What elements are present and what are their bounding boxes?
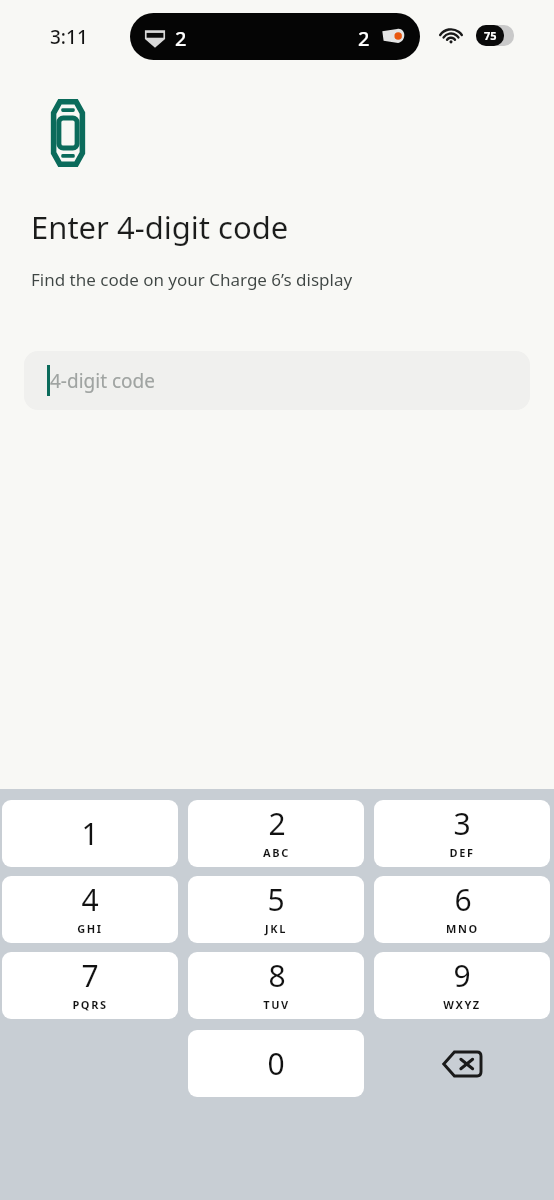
staticText: DEF	[449, 845, 475, 860]
staticText: Enter 4-digit code	[31, 206, 289, 248]
button[interactable]: 6	[374, 876, 550, 943]
button[interactable]: 7	[2, 952, 178, 1019]
staticText: Find the code on your Charge 6’s display	[31, 268, 353, 291]
staticText: 2	[175, 25, 187, 52]
button[interactable]: Backspace	[374, 1030, 550, 1097]
button[interactable]: 5	[188, 876, 364, 943]
button[interactable]: 0	[188, 1030, 364, 1097]
button[interactable]: Live game score	[130, 13, 420, 60]
staticText: 2	[358, 25, 370, 52]
button[interactable]: 2	[188, 800, 364, 867]
staticText: 4	[81, 879, 99, 920]
staticText: 1	[81, 813, 99, 854]
button[interactable]: 9	[374, 952, 550, 1019]
staticText: 4-digit code	[50, 368, 155, 394]
staticText: 7	[81, 955, 99, 996]
staticText: 75	[484, 28, 497, 43]
staticText: 6	[454, 879, 472, 920]
button[interactable]: 1	[2, 800, 178, 867]
staticText: 0	[267, 1043, 285, 1084]
staticText: TUV	[263, 997, 290, 1012]
staticText: JKL	[265, 921, 287, 936]
staticText: MNO	[446, 921, 479, 936]
staticText: PQRS	[72, 997, 108, 1012]
staticText: ABC	[263, 845, 290, 860]
staticText: 3:11	[50, 24, 88, 50]
staticText: WXYZ	[443, 997, 481, 1012]
staticText: 5	[267, 879, 285, 920]
staticText: 9	[453, 955, 471, 996]
button[interactable]: 3	[374, 800, 550, 867]
staticText: GHI	[77, 921, 103, 936]
button[interactable]: 4-digit code	[24, 351, 530, 410]
button[interactable]: 4	[2, 876, 178, 943]
staticText: 2	[268, 803, 286, 844]
staticText: 8	[268, 955, 286, 996]
staticText: 3	[453, 803, 471, 844]
button[interactable]: 8	[188, 952, 364, 1019]
